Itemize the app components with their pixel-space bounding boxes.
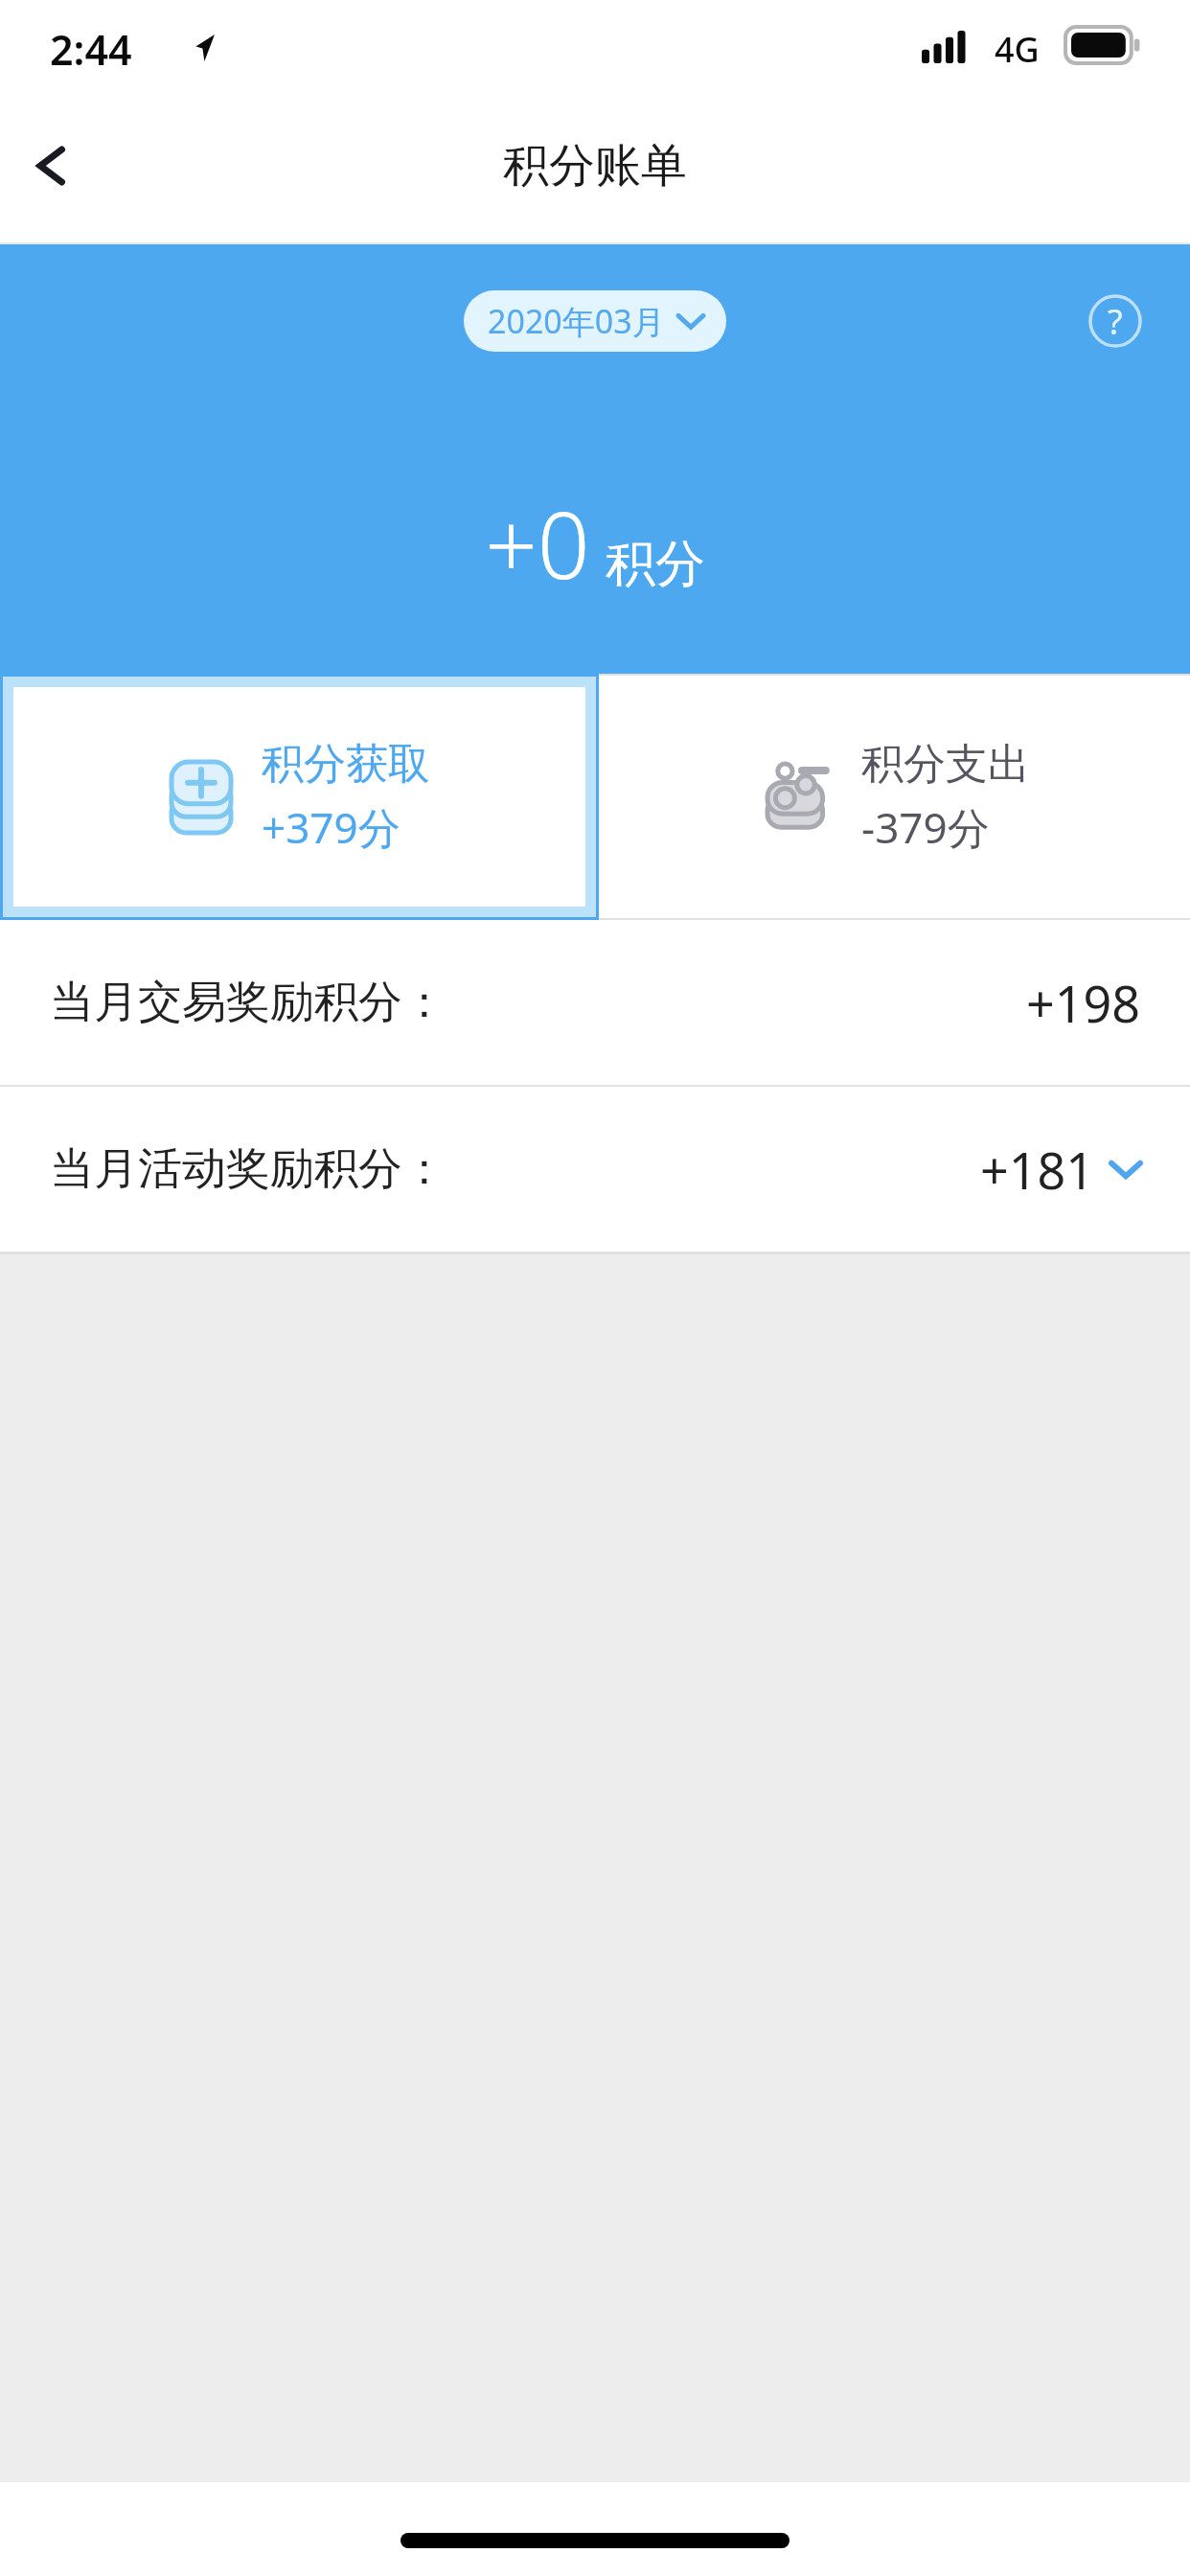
- button[interactable]: 积分获取: [13, 687, 585, 907]
- staticText: 积分: [606, 533, 705, 596]
- staticText: 2020年03月: [488, 299, 665, 343]
- staticText: 积分账单: [503, 137, 687, 195]
- staticText: +181: [980, 1136, 1094, 1204]
- staticText: -379分: [861, 798, 990, 856]
- staticText: +0: [485, 480, 590, 606]
- button[interactable]: 当月交易奖励积分：: [0, 920, 1190, 1085]
- button[interactable]: 积分支出: [599, 674, 1190, 920]
- staticText: +379分: [262, 798, 400, 856]
- staticText: 2:44: [50, 21, 132, 78]
- staticText: 积分获取: [262, 738, 430, 791]
- staticText: +198: [1026, 969, 1140, 1037]
- staticText: 当月交易奖励积分：: [50, 975, 446, 1030]
- button[interactable]: 帮助: [1088, 294, 1142, 348]
- button[interactable]: 返回: [0, 113, 105, 218]
- button[interactable]: 2020年03月: [464, 290, 726, 352]
- staticText: 4G: [995, 26, 1040, 73]
- staticText: 当月活动奖励积分：: [50, 1141, 446, 1197]
- staticText: ?: [1108, 298, 1123, 345]
- button[interactable]: 当月活动奖励积分：: [0, 1087, 1190, 1252]
- staticText: 积分支出: [861, 738, 1030, 791]
